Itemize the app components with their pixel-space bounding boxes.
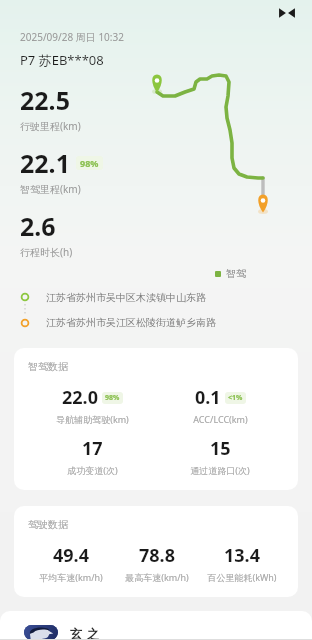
staticText: 江苏省苏州市吴中区木渎镇中山东路 (46, 291, 206, 304)
staticText: ACC/LCC(km) (193, 413, 248, 425)
staticText: 江苏省苏州市吴江区松陵街道鲈乡南路 (46, 316, 216, 329)
staticText: 百公里能耗(kWh) (207, 571, 277, 583)
staticText: 智驾 (226, 267, 246, 280)
staticText: 98% (105, 393, 120, 403)
staticText: 驾驶数据 (28, 518, 68, 531)
staticText: 15 (210, 436, 231, 461)
staticText: P7 苏EB***08 (20, 51, 104, 69)
staticText: 成功变道(次) (67, 464, 118, 476)
button[interactable]: Collapse (276, 2, 298, 24)
staticText: 智驾数据 (28, 360, 68, 373)
staticText: 平均车速(km/h) (39, 571, 103, 583)
staticText: 78.8 (139, 543, 175, 568)
staticText: 49.4 (53, 543, 89, 568)
button[interactable]: 驾驶数据 (14, 506, 298, 597)
staticText: 通过道路口(次) (190, 464, 250, 476)
staticText: 玄_之 (70, 625, 99, 640)
staticText: 98% (80, 157, 99, 169)
staticText: 13.4 (224, 543, 260, 568)
staticText: 22.0 (62, 385, 98, 410)
button[interactable]: 玄_之 (0, 611, 312, 640)
staticText: <1% (228, 393, 243, 403)
staticText: 17 (82, 436, 103, 461)
button[interactable]: 智驾数据 (14, 348, 298, 490)
staticText: 行驶里程(km) (20, 119, 81, 133)
staticText: 22.1 (20, 146, 70, 180)
staticText: 22.5 (20, 83, 70, 117)
staticText: 0.1 (195, 385, 221, 410)
staticText: 行程时长(h) (20, 245, 73, 259)
staticText: 最高车速(km/h) (125, 571, 189, 583)
staticText: 2.6 (20, 209, 56, 243)
staticText: 导航辅助驾驶(km) (56, 413, 129, 425)
staticText: 2025/09/28 周日 10:32 (20, 30, 124, 44)
staticText: 智驾里程(km) (20, 182, 81, 196)
